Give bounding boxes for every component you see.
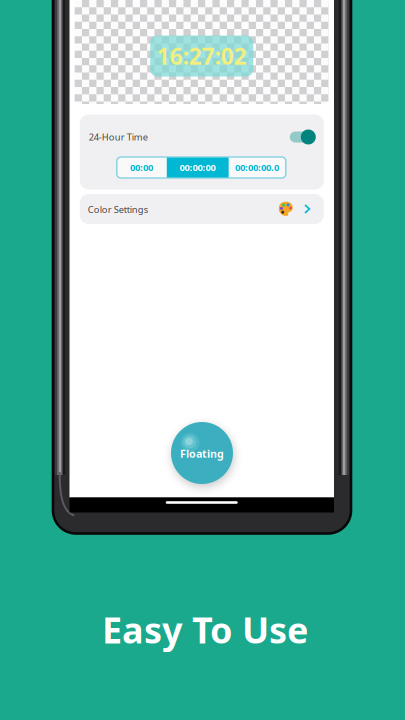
staticText: 00:00:00.0 — [235, 161, 279, 174]
staticText: 16:27:02 — [157, 41, 247, 71]
button[interactable]: Toggle 24-Hour Time — [289, 129, 315, 145]
button[interactable]: Color Settings — [80, 194, 324, 224]
button[interactable]: 00:00:00 — [167, 157, 229, 178]
staticText: 00:00 — [130, 161, 153, 174]
staticText: Easy To Use — [102, 606, 308, 653]
button[interactable]: 00:00:00.0 — [229, 157, 286, 178]
staticText: Color Settings — [88, 203, 148, 216]
button[interactable]: Floating — [171, 422, 233, 484]
staticText: 00:00:00 — [180, 161, 216, 174]
staticText: Floating — [180, 446, 224, 461]
button[interactable]: 00:00 — [117, 157, 167, 178]
staticText: 24-Hour Time — [89, 131, 148, 143]
